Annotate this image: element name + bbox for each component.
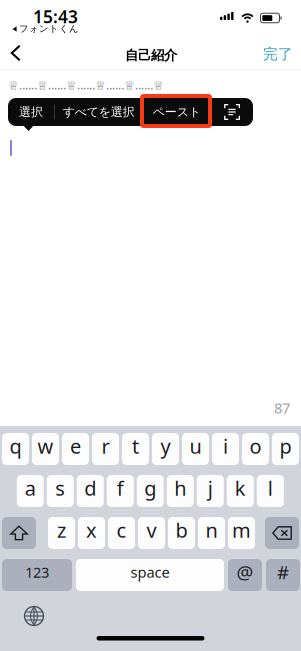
- staticText: u: [189, 433, 201, 459]
- button[interactable]: @: [228, 559, 262, 591]
- button[interactable]: h: [167, 475, 194, 507]
- staticText: x: [86, 517, 97, 543]
- staticText: q: [9, 433, 21, 459]
- button[interactable]: o: [242, 433, 269, 465]
- button[interactable]: y: [152, 433, 179, 465]
- button[interactable]: t: [122, 433, 149, 465]
- button[interactable]: j: [197, 475, 224, 507]
- staticText: @: [236, 560, 253, 584]
- button[interactable]: d: [77, 475, 104, 507]
- staticText: o: [249, 433, 261, 459]
- staticText: 87: [274, 398, 290, 417]
- staticText: 完了: [263, 45, 293, 63]
- button[interactable]: x: [78, 517, 105, 549]
- staticText: w: [37, 433, 53, 459]
- button[interactable]: すべてを選択: [55, 98, 143, 126]
- button[interactable]: e: [62, 433, 89, 465]
- staticText: 自己紹介: [125, 47, 177, 63]
- staticText: j: [208, 475, 213, 501]
- staticText: l: [268, 475, 273, 501]
- button[interactable]: p: [272, 433, 299, 465]
- staticText: e: [70, 433, 81, 459]
- button[interactable]: a: [17, 475, 44, 507]
- button[interactable]: z: [48, 517, 75, 549]
- staticText: #: [277, 560, 289, 584]
- staticText: a: [25, 475, 36, 501]
- button[interactable]: m: [228, 517, 255, 549]
- button[interactable]: l: [257, 475, 284, 507]
- staticText: p: [279, 433, 291, 459]
- button[interactable]: u: [182, 433, 209, 465]
- staticText: y: [160, 433, 170, 459]
- button[interactable]: w: [32, 433, 59, 465]
- button[interactable]: f: [107, 475, 134, 507]
- staticText: i: [223, 433, 228, 459]
- button[interactable]: i: [212, 433, 239, 465]
- staticText: 123: [25, 562, 49, 582]
- button[interactable]: n: [198, 517, 225, 549]
- staticText: g: [144, 475, 156, 501]
- staticText: k: [235, 475, 246, 501]
- staticText: s: [55, 475, 65, 501]
- staticText: d: [84, 475, 96, 501]
- button[interactable]: 完了: [260, 38, 296, 70]
- staticText: n: [205, 517, 217, 543]
- staticText: フォントくん: [19, 23, 79, 34]
- staticText: m: [232, 517, 251, 543]
- button[interactable]: 123: [2, 559, 72, 591]
- staticText: space: [130, 562, 169, 582]
- button[interactable]: v: [138, 517, 165, 549]
- staticText: b: [175, 517, 187, 543]
- button[interactable]: k: [227, 475, 254, 507]
- button[interactable]: Scan text: [211, 98, 253, 126]
- staticText: ペースト: [153, 105, 201, 119]
- button[interactable]: ペースト: [143, 98, 210, 126]
- button[interactable]: Next keyboard: [20, 603, 48, 629]
- staticText: 選択: [19, 105, 43, 119]
- button[interactable]: #: [266, 559, 300, 591]
- button[interactable]: space: [76, 559, 224, 591]
- button[interactable]: q: [2, 433, 29, 465]
- staticText: z: [57, 517, 66, 543]
- staticText: ♕‥‥‥♕‥‥‥♕‥‥‥♕‥‥‥♕‥‥‥♕: [8, 77, 164, 93]
- staticText: t: [132, 433, 139, 459]
- staticText: r: [101, 433, 109, 459]
- staticText: c: [116, 517, 126, 543]
- button[interactable]: 選択: [8, 98, 54, 126]
- staticText: 15:43: [33, 5, 78, 28]
- button[interactable]: b: [168, 517, 195, 549]
- staticText: v: [146, 517, 156, 543]
- button[interactable]: Shift: [2, 517, 36, 549]
- staticText: f: [117, 475, 124, 501]
- button[interactable]: Back: [0, 37, 34, 69]
- button[interactable]: r: [92, 433, 119, 465]
- button[interactable]: s: [47, 475, 74, 507]
- button[interactable]: Delete: [265, 517, 299, 549]
- staticText: h: [174, 475, 186, 501]
- button[interactable]: c: [108, 517, 135, 549]
- button[interactable]: g: [137, 475, 164, 507]
- staticText: すべてを選択: [63, 105, 135, 119]
